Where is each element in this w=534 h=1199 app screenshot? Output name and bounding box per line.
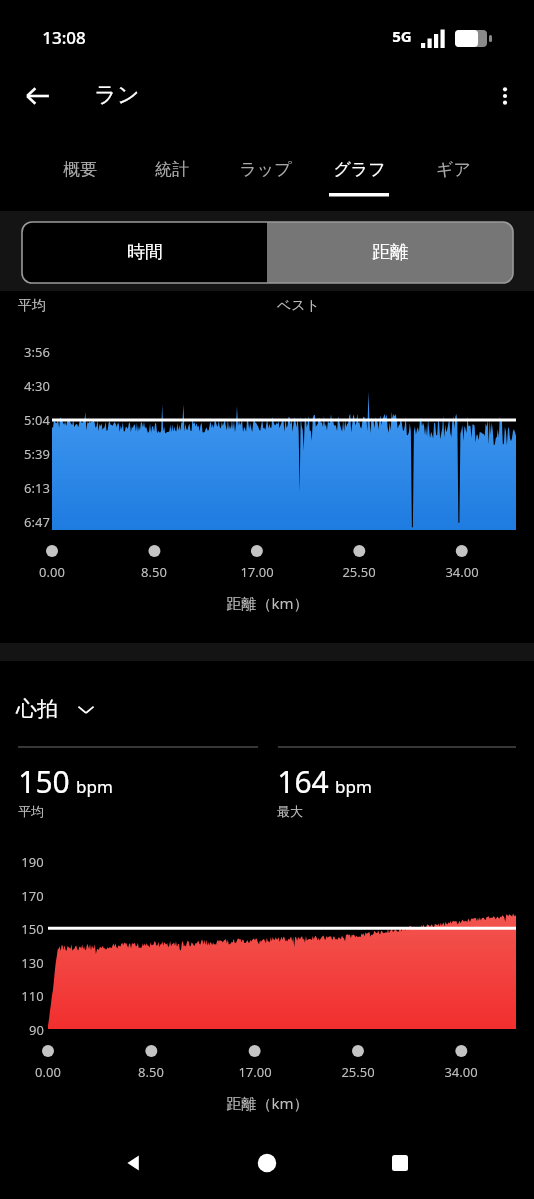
staticText: 5:39 — [24, 445, 50, 463]
staticText: 平均 — [18, 803, 44, 819]
staticText: 4:30 — [24, 377, 50, 395]
button[interactable]: Recent apps — [376, 1139, 424, 1187]
staticText: 164 — [277, 761, 329, 802]
staticText: ベスト — [277, 297, 320, 315]
button[interactable]: 時間 — [22, 222, 267, 283]
staticText: 3:56 — [24, 343, 50, 361]
button[interactable]: 距離 — [267, 222, 513, 283]
staticText: 170 — [21, 887, 44, 905]
staticText: 190 — [21, 853, 44, 871]
staticText: ラン — [94, 81, 140, 109]
staticText: ラップ — [239, 159, 292, 180]
button[interactable]: Back — [110, 1139, 158, 1187]
staticText: 平均 — [18, 297, 46, 315]
staticText: 時間 — [127, 241, 163, 264]
staticText: 17.00 — [240, 563, 274, 581]
button[interactable]: More options — [481, 72, 529, 120]
staticText: 概要 — [63, 159, 97, 180]
staticText: 150 — [21, 920, 44, 938]
staticText: 150 — [18, 761, 70, 802]
staticText: 25.50 — [342, 563, 376, 581]
staticText: 最大 — [277, 803, 303, 819]
staticText: 6:47 — [24, 513, 50, 531]
staticText: 心拍 — [16, 696, 58, 722]
button[interactable]: グラフ — [313, 135, 405, 203]
staticText: 17.00 — [238, 1063, 272, 1081]
staticText: 90 — [29, 1021, 44, 1039]
staticText: 110 — [21, 987, 44, 1005]
staticText: 0.00 — [35, 1063, 61, 1081]
staticText: グラフ — [333, 159, 386, 180]
staticText: 距離（km） — [226, 593, 309, 613]
staticText: 統計 — [155, 159, 189, 180]
staticText: 8.50 — [141, 563, 167, 581]
staticText: 距離（km） — [226, 1093, 309, 1113]
staticText: 0.00 — [39, 563, 65, 581]
staticText: 5G — [392, 26, 412, 46]
button[interactable]: ギア — [407, 135, 499, 203]
button[interactable]: Home — [243, 1139, 291, 1187]
staticText: bpm — [335, 775, 372, 798]
button[interactable]: 心拍 — [16, 687, 96, 731]
staticText: 130 — [21, 954, 44, 972]
staticText: 34.00 — [445, 563, 479, 581]
staticText: 25.50 — [341, 1063, 375, 1081]
button[interactable]: 統計 — [126, 135, 218, 203]
staticText: 34.00 — [444, 1063, 478, 1081]
staticText: 距離 — [372, 241, 408, 264]
staticText: ギア — [436, 159, 471, 180]
staticText: 5:04 — [24, 411, 50, 429]
button[interactable]: 概要 — [34, 135, 126, 203]
staticText: bpm — [76, 775, 113, 798]
staticText: 13:08 — [42, 26, 86, 49]
button[interactable]: ラップ — [219, 135, 311, 203]
button[interactable]: Back — [14, 72, 62, 120]
staticText: 6:13 — [24, 479, 50, 497]
staticText: 8.50 — [138, 1063, 164, 1081]
